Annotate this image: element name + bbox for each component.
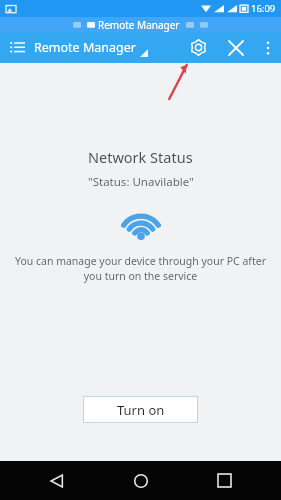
button[interactable]: Close bbox=[217, 32, 255, 63]
staticText: Remote Manager bbox=[98, 18, 180, 32]
button[interactable]: Recent apps bbox=[198, 461, 250, 500]
staticText: Remote Manager bbox=[34, 39, 136, 56]
staticText: Network Status bbox=[88, 147, 193, 167]
staticText: 16:09 bbox=[251, 2, 276, 15]
button[interactable]: Home bbox=[115, 461, 167, 500]
staticText: Turn on bbox=[117, 401, 165, 419]
staticText: "Status: Unavilable" bbox=[88, 174, 194, 190]
staticText: You can manage your device through your … bbox=[10, 254, 271, 283]
button[interactable]: More options bbox=[255, 32, 281, 63]
button[interactable]: Menu bbox=[0, 32, 34, 63]
button[interactable]: Turn on bbox=[83, 396, 198, 423]
button[interactable]: Back bbox=[31, 461, 83, 500]
button[interactable]: Settings bbox=[179, 32, 217, 63]
